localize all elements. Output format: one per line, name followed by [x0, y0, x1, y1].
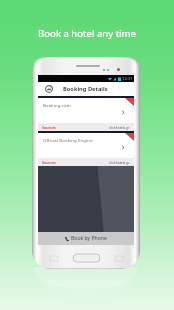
staticText: 12:31 — [122, 76, 133, 82]
staticText: Book by Phone — [71, 235, 107, 242]
staticText: Sources — [42, 125, 56, 130]
staticText: Booking Details — [63, 85, 108, 93]
staticText: Book a hotel any time — [0, 27, 174, 40]
staticText: clickhotels.gr — [109, 125, 130, 129]
button[interactable]: Up — [45, 85, 53, 93]
staticText: Booking.com — [43, 102, 71, 108]
button[interactable]: Book by Phone — [38, 232, 134, 245]
staticText: Sources — [42, 160, 56, 165]
staticText: Official Booking Engine — [43, 137, 93, 143]
button[interactable]: Official Booking Engine — [38, 133, 134, 166]
staticText: clickhotels.gr — [109, 160, 130, 164]
button[interactable]: Booking.com — [38, 98, 134, 131]
